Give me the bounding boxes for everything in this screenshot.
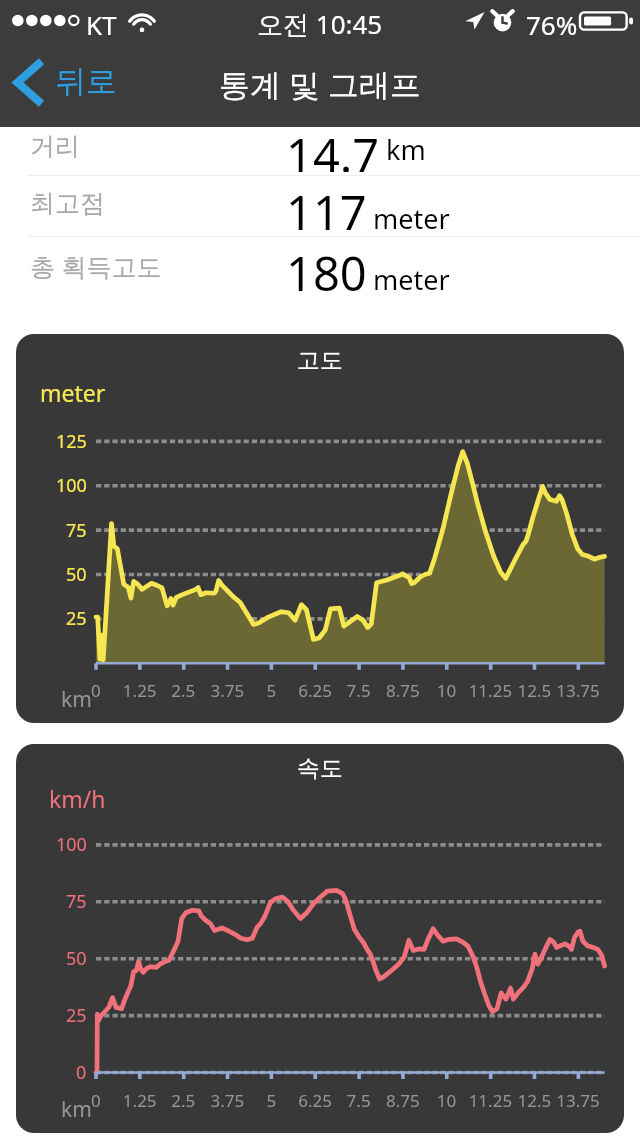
staticText: 117 <box>286 180 367 241</box>
staticText: meter <box>373 261 450 298</box>
staticText: 통계 및 그래프 <box>219 63 422 105</box>
button[interactable]: 고도 <box>16 334 624 723</box>
staticText: 총 획득고도 <box>30 249 162 283</box>
staticText: 오전 10:45 <box>257 6 383 42</box>
staticText: meter <box>40 377 106 408</box>
button[interactable]: 거리 <box>0 127 640 176</box>
staticText: km/h <box>49 783 106 814</box>
button[interactable]: 최고점 <box>0 176 640 237</box>
staticText: km <box>386 131 426 168</box>
staticText: 최고점 <box>30 188 105 219</box>
staticText: 뒤로 <box>55 62 117 101</box>
staticText: 거리 <box>30 131 80 162</box>
staticText: meter <box>373 200 450 237</box>
button[interactable]: 뒤로 <box>0 56 137 109</box>
staticText: 76% <box>526 7 578 42</box>
staticText: 14.7 <box>286 123 380 172</box>
staticText: 180 <box>286 241 367 302</box>
staticText: km <box>61 685 92 714</box>
staticText: 고도 <box>297 346 343 375</box>
staticText: 속도 <box>297 754 343 783</box>
staticText: km <box>61 1095 92 1124</box>
button[interactable]: 총 획득고도 <box>0 237 640 298</box>
staticText: KT <box>86 7 117 42</box>
button[interactable]: 속도 <box>16 744 624 1133</box>
